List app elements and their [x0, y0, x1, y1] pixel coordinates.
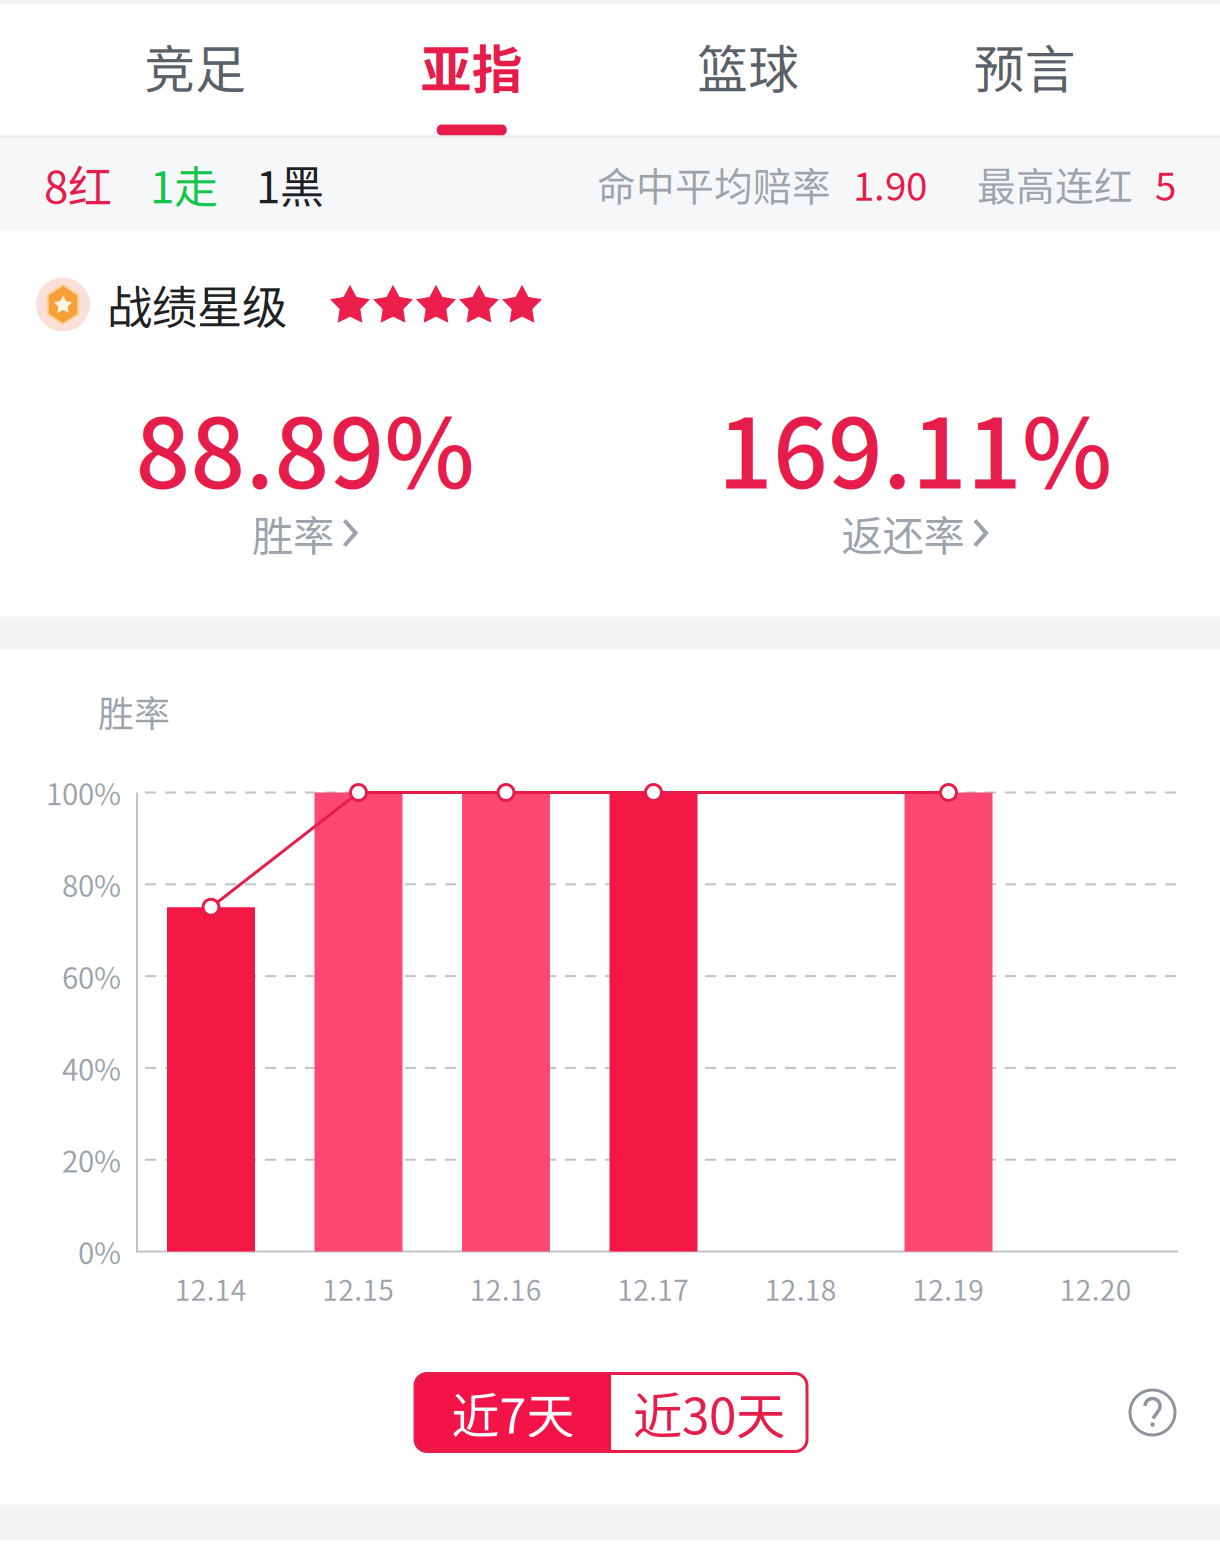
- staticText: 12.16: [470, 1268, 542, 1309]
- staticText: 12.14: [175, 1268, 247, 1309]
- button[interactable]: 169.11%: [610, 373, 1220, 584]
- button[interactable]: 88.89%: [0, 373, 610, 584]
- staticText: 12.15: [322, 1268, 394, 1309]
- staticText: 80%: [62, 863, 121, 906]
- button[interactable]: 近30天: [611, 1373, 807, 1451]
- staticText: 169.11%: [718, 377, 1112, 516]
- staticText: 100%: [46, 771, 121, 814]
- staticText: 亚指: [421, 29, 523, 103]
- staticText: 竞足: [144, 29, 246, 103]
- staticText: 12.20: [1060, 1268, 1132, 1309]
- button[interactable]: 亚指: [333, 3, 610, 135]
- staticText: 12.17: [617, 1268, 689, 1309]
- staticText: 胜率: [252, 503, 334, 563]
- staticText: 0%: [78, 1230, 121, 1273]
- staticText: 5: [1155, 156, 1176, 212]
- staticText: 12.18: [765, 1268, 837, 1309]
- staticText: 胜率: [98, 685, 170, 738]
- staticText: 命中平均赔率: [597, 156, 831, 212]
- staticText: 近30天: [633, 1377, 785, 1448]
- staticText: 88.89%: [135, 377, 474, 516]
- staticText: 返还率: [841, 503, 964, 563]
- button[interactable]: 近7天: [415, 1373, 611, 1451]
- staticText: 60%: [62, 955, 121, 997]
- staticText: 1.90: [853, 156, 927, 212]
- button[interactable]: 预言: [886, 3, 1163, 135]
- staticText: 12.19: [912, 1268, 984, 1309]
- button[interactable]: Help: [1130, 1390, 1175, 1435]
- staticText: 近7天: [451, 1378, 574, 1447]
- staticText: 最高连红: [977, 156, 1133, 212]
- button[interactable]: 竞足: [57, 3, 333, 135]
- staticText: 8红: [44, 152, 112, 216]
- button[interactable]: 篮球: [610, 3, 886, 135]
- staticText: 篮球: [697, 29, 799, 103]
- staticText: 预言: [974, 29, 1076, 103]
- staticText: 20%: [62, 1138, 121, 1181]
- staticText: 40%: [62, 1047, 121, 1089]
- staticText: 战绩星级: [107, 272, 287, 337]
- staticText: 1黑: [256, 152, 324, 216]
- staticText: 1走: [150, 152, 218, 216]
